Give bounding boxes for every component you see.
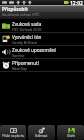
staticText: Uložit: [67, 134, 75, 138]
button[interactable]: Vyzváněcí tón: [0, 33, 84, 45]
staticText: Zvuková sada: [12, 21, 42, 27]
button[interactable]: Stáhnout: [28, 125, 55, 140]
staticText: Sunrise: [12, 53, 25, 58]
button[interactable]: Připomenutí: [0, 59, 84, 71]
staticText: Přidat na plochu: [2, 134, 25, 138]
button[interactable]: Zvukové upozornění: [0, 46, 84, 58]
staticText: HTC Default 2010: [12, 27, 42, 32]
button[interactable]: Přidat na plochu: [0, 125, 26, 140]
staticText: Přizpůsobit: [2, 6, 28, 12]
staticText: Zvukové upozornění: [12, 47, 56, 53]
staticText: Gently Brilliant: [12, 40, 37, 45]
button[interactable]: Uložit: [57, 125, 84, 140]
staticText: Připomenutí: [12, 60, 39, 66]
staticText: Vyzváněcí tón: [12, 34, 42, 40]
button[interactable]: Zvuková sada: [0, 20, 84, 32]
staticText: Stáhnout: [35, 134, 48, 138]
staticText: New Day: [12, 66, 27, 71]
staticText: Současná scéna: HTC: [2, 12, 40, 17]
staticText: 12:02: [70, 0, 83, 5]
